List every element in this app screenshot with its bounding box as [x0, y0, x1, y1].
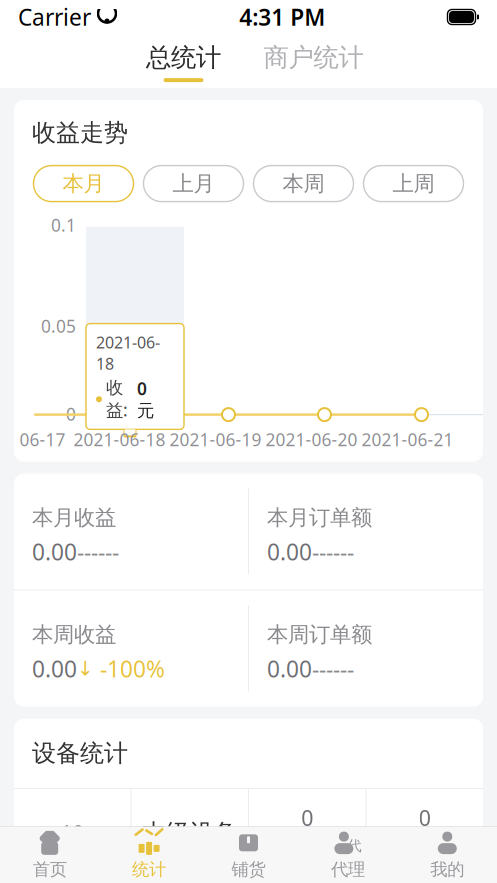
staticText: 本周收益 [32, 621, 116, 648]
button[interactable]: 铺货 [199, 827, 298, 883]
staticText: 总统计 [146, 42, 221, 73]
staticText: 本级设备 [142, 818, 238, 848]
button[interactable]: 本月 [33, 166, 133, 202]
staticText: 2021-06-18 [73, 428, 165, 451]
staticText: 0 [301, 804, 313, 832]
staticText: 0.00 [32, 654, 77, 684]
staticText: 代理 [331, 859, 365, 880]
staticText: 设备统计 [32, 739, 128, 768]
staticText: ------ [312, 654, 354, 684]
staticText: 代 [347, 837, 362, 855]
staticText: 0.00 [32, 537, 77, 567]
staticText: 上周 [392, 170, 434, 197]
staticText: 我的 [430, 859, 464, 880]
staticText: 0.00 [267, 654, 312, 684]
button[interactable]: 总统计 [118, 42, 248, 82]
staticText: ------ [77, 537, 119, 567]
staticText: 4:31 PM [239, 2, 325, 32]
button[interactable]: 上周 [363, 166, 463, 202]
staticText: 0.00 [267, 537, 312, 567]
staticText: 上月 [172, 170, 214, 197]
staticText: 本周 [282, 170, 324, 197]
staticText: Carrier [18, 2, 91, 32]
button[interactable]: 上月 [143, 166, 243, 202]
staticText: 0元 [137, 377, 154, 421]
staticText: 收益走势 [32, 118, 128, 148]
staticText: 2021-06-19 [169, 428, 261, 451]
button[interactable]: 商户统计 [248, 42, 378, 82]
staticText: 本月 [62, 170, 104, 197]
staticText: 收益: [106, 377, 133, 421]
staticText: 本月收益 [32, 504, 116, 531]
staticText: ↓ [77, 657, 94, 680]
button[interactable]: 我的 [398, 827, 497, 883]
staticText: ------ [312, 537, 354, 567]
staticText: -100% [94, 654, 165, 684]
staticText: 铺货 [231, 859, 265, 880]
staticText: 2021-06-21 [361, 428, 453, 451]
staticText: 统计 [132, 859, 166, 880]
staticText: 0 [419, 804, 431, 832]
staticText: 2021-06-18 [96, 332, 160, 374]
staticText: 商户统计 [263, 42, 363, 73]
button[interactable]: 统计 [99, 827, 199, 883]
staticText: 首页 [33, 859, 67, 880]
button[interactable]: 首页 [0, 827, 99, 883]
staticText: 0 [66, 403, 76, 426]
staticText: 0.05 [41, 315, 76, 338]
staticText: 2021-06-20 [265, 428, 357, 451]
staticText: 本周订单额 [267, 621, 372, 648]
staticText: 10 [60, 819, 84, 847]
staticText: 线充数 [277, 838, 337, 863]
button[interactable]: 代 [298, 827, 398, 883]
button[interactable]: 本周 [253, 166, 353, 202]
staticText: 本月订单额 [267, 504, 372, 531]
staticText: 06-17 [19, 428, 65, 451]
staticText: 已铺货 [395, 838, 455, 863]
staticText: 0.1 [51, 214, 76, 237]
